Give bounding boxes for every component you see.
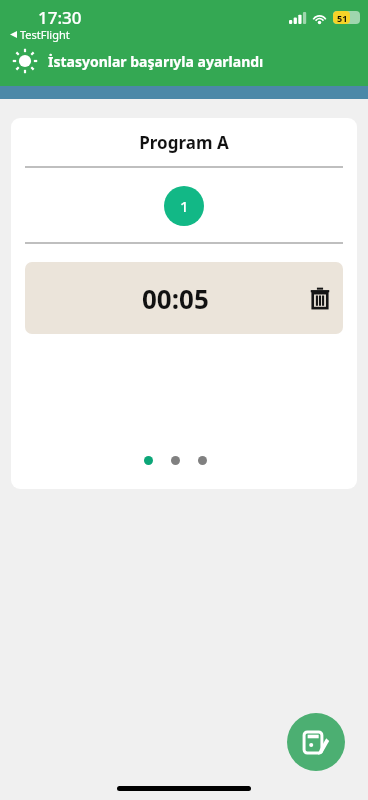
- staticText: 17:30: [38, 6, 82, 29]
- button[interactable]: [171, 456, 180, 465]
- button[interactable]: 1: [164, 186, 204, 226]
- button[interactable]: [198, 456, 207, 465]
- button[interactable]: Edit program: [287, 713, 345, 771]
- staticText: 1: [180, 196, 189, 216]
- button[interactable]: Delete: [297, 275, 343, 321]
- staticText: 00:05: [142, 281, 209, 316]
- staticText: TestFlight: [20, 27, 70, 42]
- button[interactable]: [144, 456, 153, 465]
- staticText: Program A: [11, 131, 357, 154]
- staticText: 51: [337, 12, 348, 24]
- staticText: İstasyonlar başarıyla ayarlandı: [48, 52, 264, 71]
- button[interactable]: 00:05: [25, 262, 343, 334]
